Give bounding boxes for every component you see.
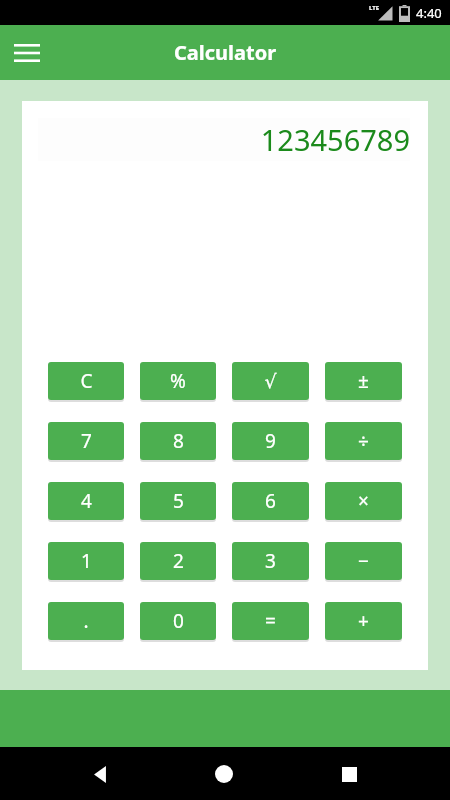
- button[interactable]: 0: [140, 602, 216, 640]
- staticText: 1: [81, 548, 92, 574]
- button[interactable]: 4: [48, 482, 124, 520]
- button[interactable]: =: [232, 602, 309, 640]
- staticText: Calculator: [174, 39, 277, 66]
- button[interactable]: 1: [48, 542, 124, 580]
- button[interactable]: %: [140, 362, 216, 400]
- staticText: 2: [173, 548, 184, 574]
- button[interactable]: ±: [325, 362, 402, 400]
- staticText: ±: [358, 368, 369, 394]
- button[interactable]: 8: [140, 422, 216, 460]
- button[interactable]: 5: [140, 482, 216, 520]
- staticText: %: [170, 368, 186, 394]
- button[interactable]: 7: [48, 422, 124, 460]
- staticText: 4:40: [416, 4, 442, 22]
- button[interactable]: √: [232, 362, 309, 400]
- button[interactable]: Back: [76, 750, 124, 798]
- staticText: 8: [173, 428, 184, 454]
- button[interactable]: .: [48, 602, 124, 640]
- staticText: √: [264, 370, 277, 392]
- staticText: =: [265, 608, 276, 634]
- button[interactable]: 2: [140, 542, 216, 580]
- button[interactable]: ÷: [325, 422, 402, 460]
- staticText: 7: [81, 428, 92, 454]
- button[interactable]: C: [48, 362, 124, 400]
- button[interactable]: Recent apps: [325, 750, 373, 798]
- staticText: C: [80, 368, 93, 394]
- staticText: 6: [265, 488, 276, 514]
- staticText: 123456789: [260, 120, 410, 159]
- button[interactable]: ×: [325, 482, 402, 520]
- staticText: 9: [265, 428, 276, 454]
- button[interactable]: Home: [200, 750, 248, 798]
- staticText: .: [83, 608, 89, 634]
- staticText: ÷: [358, 428, 369, 454]
- button[interactable]: 3: [232, 542, 309, 580]
- staticText: 4: [81, 488, 92, 514]
- button[interactable]: 6: [232, 482, 309, 520]
- button[interactable]: −: [325, 542, 402, 580]
- button[interactable]: +: [325, 602, 402, 640]
- staticText: 5: [173, 488, 184, 514]
- button[interactable]: 9: [232, 422, 309, 460]
- staticText: 3: [265, 548, 276, 574]
- staticText: 0: [173, 608, 184, 634]
- button[interactable]: Open navigation menu: [6, 32, 48, 74]
- staticText: LTE: [369, 4, 380, 12]
- staticText: −: [358, 548, 369, 574]
- staticText: +: [358, 608, 369, 634]
- staticText: ×: [358, 488, 369, 514]
